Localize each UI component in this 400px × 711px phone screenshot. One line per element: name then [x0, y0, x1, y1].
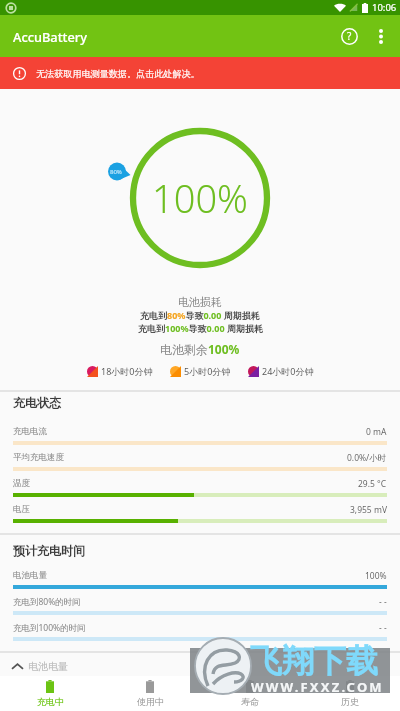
button[interactable]: Help	[332, 19, 366, 53]
button[interactable]: More options	[366, 21, 396, 51]
staticText: 无法获取用电测量数据。点击此处解决。	[36, 68, 200, 79]
staticText: 充电到80%导致0.00 周期损耗	[140, 309, 260, 321]
staticText: - -	[379, 596, 387, 608]
button[interactable]: 无法获取用电测量数据。点击此处解决。	[0, 57, 400, 89]
staticText: 3,955 mV	[350, 504, 387, 516]
button[interactable]: 寿命	[200, 676, 300, 711]
staticText: 电池剩余100%	[160, 341, 240, 357]
staticText: 0 mA	[366, 426, 387, 438]
staticText: 电池电量	[13, 570, 47, 581]
staticText: WWW.FXXZ.COM	[251, 678, 384, 696]
button[interactable]: 充电中	[0, 676, 100, 711]
staticText: 100%	[152, 172, 248, 224]
staticText: - -	[379, 622, 387, 634]
staticText: 充电中	[37, 696, 64, 707]
staticText: 18小时0分钟	[101, 365, 153, 377]
staticText: 寿命	[241, 696, 259, 707]
staticText: 24小时0分钟	[262, 365, 314, 377]
staticText: 0.0%/小时	[347, 452, 387, 464]
button[interactable]: 平均充电速度	[0, 452, 400, 478]
button[interactable]: 使用中	[100, 676, 200, 711]
staticText: 使用中	[137, 696, 164, 707]
staticText: 29.5 °C	[358, 478, 387, 490]
staticText: 充电到100%的时间	[13, 622, 86, 634]
staticText: 历史	[341, 696, 359, 707]
button[interactable]: 充电到80%的时间	[0, 596, 400, 622]
staticText: 充电电流	[13, 426, 47, 437]
staticText: 平均充电速度	[13, 452, 64, 463]
staticText: 10:06	[372, 1, 397, 14]
button[interactable]: 充电到100%的时间	[0, 622, 400, 644]
button[interactable]: 电压	[0, 504, 400, 526]
button[interactable]: 历史	[300, 676, 400, 711]
staticText: 80%	[110, 168, 122, 176]
staticText: 充电到80%的时间	[13, 596, 81, 608]
staticText: 电池电量	[28, 660, 68, 673]
button[interactable]: 温度	[0, 478, 400, 504]
staticText: 5小时0分钟	[184, 365, 231, 377]
staticText: 飞翔下载	[250, 641, 378, 681]
staticText: 电池损耗	[178, 295, 222, 309]
button[interactable]: 充电电流	[0, 426, 400, 452]
staticText: 充电状态	[13, 395, 61, 410]
staticText: 预计充电时间	[13, 543, 85, 558]
staticText: 电压	[13, 504, 30, 515]
staticText: ?	[347, 29, 352, 43]
staticText: 100%	[365, 570, 387, 582]
button[interactable]: 电池电量	[0, 570, 400, 596]
staticText: AccuBattery	[13, 28, 87, 45]
staticText: 充电到100%导致0.00 周期损耗	[138, 322, 263, 334]
staticText: 温度	[13, 478, 30, 489]
